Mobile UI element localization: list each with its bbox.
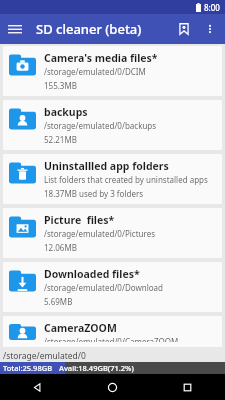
staticText: Camera's media files* bbox=[44, 51, 158, 65]
staticText: /storage/emulated/0/CameraZOOM bbox=[44, 336, 179, 342]
button[interactable]: CameraZOOM bbox=[3, 316, 222, 347]
staticText: 155.3MB bbox=[44, 80, 77, 91]
button[interactable]: backups bbox=[3, 100, 222, 150]
button[interactable]: More options bbox=[198, 17, 222, 41]
staticText: Total:25.98GB bbox=[3, 363, 53, 373]
staticText: CameraZOOM bbox=[44, 321, 117, 335]
staticText: Uninstallled app folders bbox=[44, 159, 169, 173]
button[interactable]: Home bbox=[75, 374, 150, 400]
staticText: 18.37MB used by 3 folders bbox=[44, 188, 144, 199]
staticText: Avail:18.49GB(71.2%) bbox=[59, 363, 134, 373]
button[interactable]: Picture files* bbox=[3, 208, 222, 258]
staticText: Picture files* bbox=[44, 213, 115, 227]
staticText: /storage/emulated/0 bbox=[3, 350, 86, 362]
staticText: /storage/emulated/0/DCIM bbox=[44, 66, 146, 77]
staticText: 5.69MB bbox=[44, 296, 73, 307]
button[interactable]: Open navigation drawer bbox=[0, 14, 30, 44]
staticText: 12.06MB bbox=[44, 242, 77, 253]
button[interactable]: Recent apps bbox=[150, 374, 225, 400]
button[interactable]: Uninstallled app folders bbox=[3, 154, 222, 204]
staticText: /storage/emulated/0/Download bbox=[44, 282, 163, 293]
staticText: backups bbox=[44, 105, 88, 119]
button[interactable]: Bookmarks bbox=[170, 15, 198, 43]
staticText: SD cleaner (beta) bbox=[36, 20, 142, 38]
staticText: List folders that created by uninstalled… bbox=[44, 174, 208, 185]
staticText: Downloaded files* bbox=[44, 267, 140, 281]
button[interactable]: Downloaded files* bbox=[3, 262, 222, 312]
staticText: 52.21MB bbox=[44, 134, 77, 145]
staticText: /storage/emulated/0/backups bbox=[44, 120, 157, 131]
button[interactable]: Camera's media files* bbox=[3, 46, 222, 96]
staticText: 8:00 bbox=[204, 2, 220, 13]
button[interactable]: Back bbox=[0, 374, 75, 400]
staticText: /storage/emulated/0/Pictures bbox=[44, 228, 155, 239]
